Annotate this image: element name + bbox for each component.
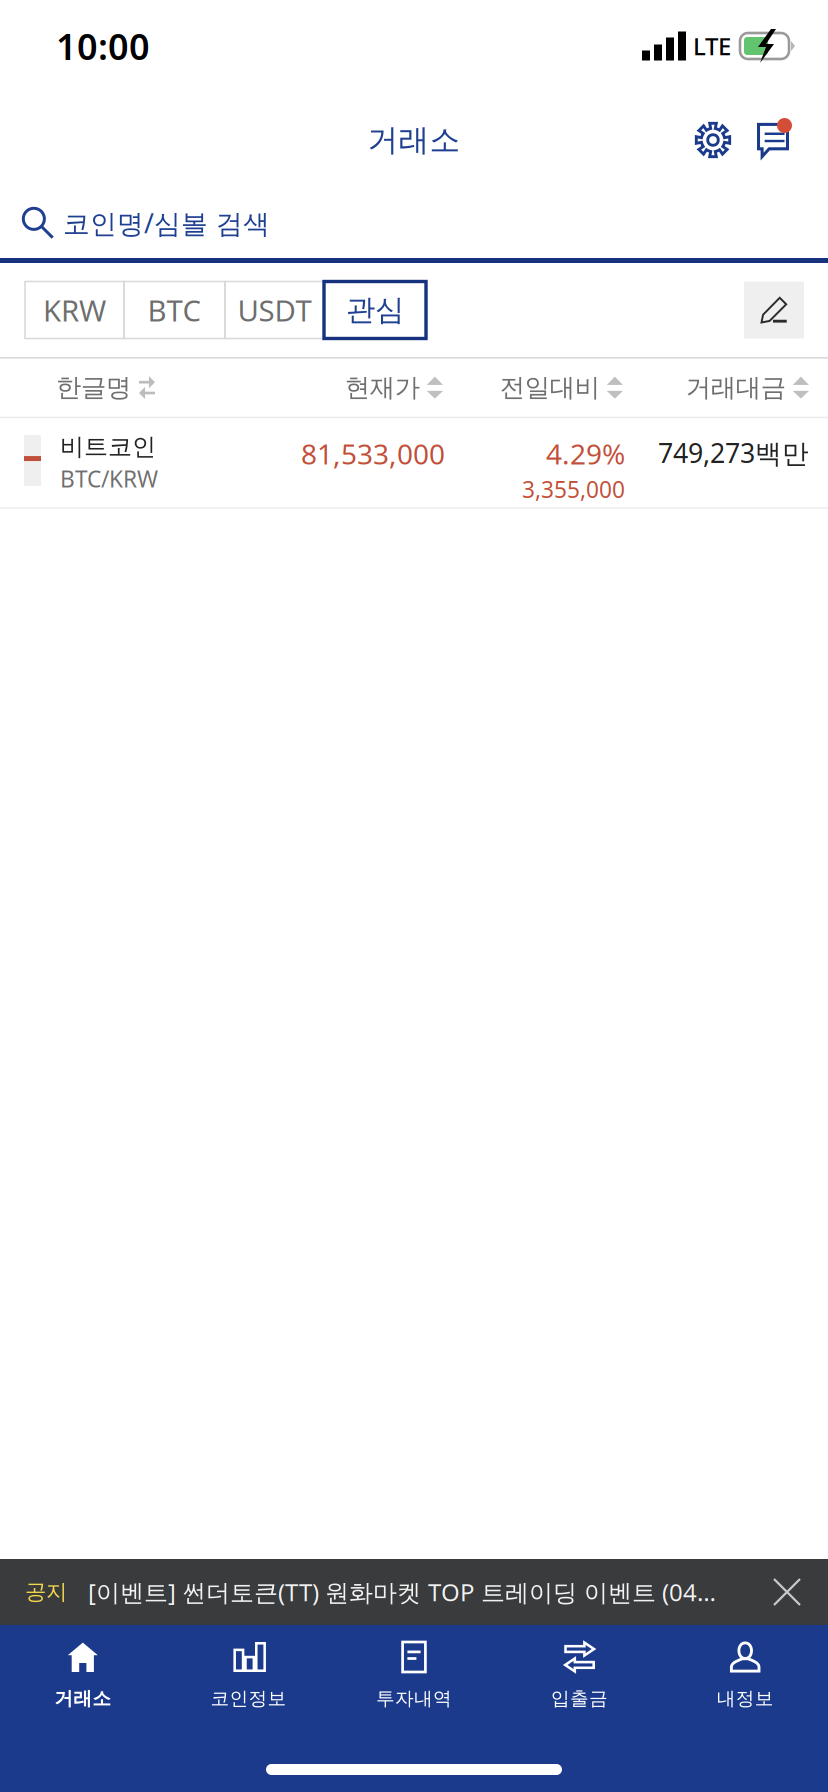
- button[interactable]: 알림: [744, 104, 802, 176]
- staticText: 3,355,000: [522, 474, 625, 504]
- staticText: 거래대금: [686, 372, 786, 403]
- button[interactable]: 편집: [744, 281, 804, 338]
- staticText: 한글명: [56, 372, 131, 403]
- staticText: 코인명/심볼 검색: [63, 205, 270, 241]
- button[interactable]: 비트코인: [0, 418, 828, 507]
- staticText: 81,533,000: [301, 435, 445, 472]
- staticText: 10:00: [56, 22, 150, 70]
- staticText: USDT: [237, 290, 311, 329]
- staticText: 현재가: [345, 372, 420, 403]
- staticText: 관심: [346, 292, 404, 328]
- staticText: 전일대비: [500, 372, 600, 403]
- button[interactable]: 코인정보: [166, 1625, 331, 1725]
- staticText: KRW: [43, 290, 106, 329]
- button[interactable]: 투자내역: [331, 1625, 497, 1725]
- button[interactable]: 내정보: [662, 1625, 828, 1725]
- button[interactable]: 전일대비: [473, 359, 623, 417]
- button[interactable]: 입출금: [497, 1625, 662, 1725]
- staticText: 거래소: [367, 121, 460, 159]
- button[interactable]: BTC: [124, 281, 225, 338]
- button[interactable]: 관심: [324, 281, 426, 338]
- button[interactable]: 현재가: [293, 359, 443, 417]
- button[interactable]: 한글명: [56, 359, 236, 417]
- button[interactable]: 거래소: [0, 1625, 166, 1725]
- staticText: [이벤트] 썬더토큰(TT) 원화마켓 TOP 트레이딩 이벤트 (04…: [88, 1576, 716, 1608]
- staticText: 내정보: [717, 1687, 774, 1710]
- staticText: BTC: [147, 290, 201, 329]
- button[interactable]: 공지 닫기: [756, 1560, 818, 1624]
- staticText: 공지: [25, 1579, 67, 1605]
- button[interactable]: 코인명/심볼 검색: [0, 188, 828, 258]
- staticText: 749,273백만: [658, 435, 809, 470]
- staticText: LTE: [693, 30, 731, 62]
- button[interactable]: 설정: [682, 104, 744, 176]
- staticText: 비트코인: [60, 432, 156, 462]
- staticText: 입출금: [551, 1687, 608, 1710]
- staticText: 투자내역: [376, 1687, 452, 1710]
- staticText: 코인정보: [210, 1687, 286, 1710]
- button[interactable]: 거래대금: [659, 359, 809, 417]
- staticText: BTC/KRW: [60, 463, 158, 494]
- button[interactable]: KRW: [25, 281, 124, 338]
- button[interactable]: USDT: [225, 281, 324, 338]
- staticText: 4.29%: [546, 435, 625, 472]
- staticText: 거래소: [54, 1687, 111, 1710]
